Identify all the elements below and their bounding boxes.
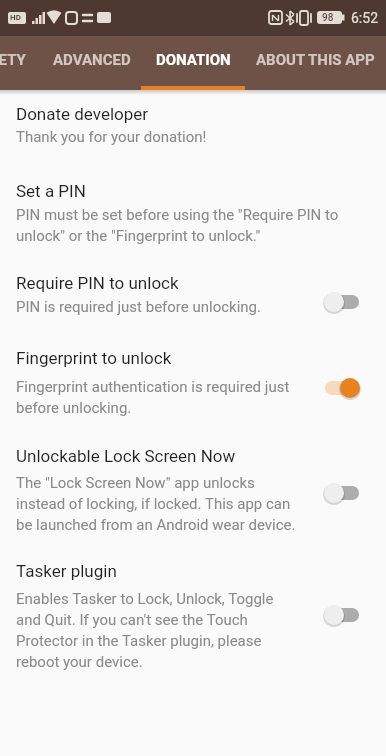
staticText: Tasker plugin [16,561,117,581]
staticText: ADVANCED [53,51,131,69]
staticText: Require PIN to unlock [16,273,179,293]
staticText: Enables Tasker to Lock, Unlock, Toggle a… [16,590,274,670]
staticText: Thank you for your donation! [16,128,207,146]
button[interactable]: ABOUT THIS APP [227,36,386,90]
button[interactable]: DONATION [136,36,250,90]
button[interactable]: Require PIN to unlock [0,262,386,336]
button[interactable]: Unlockable Lock Screen Now [0,435,386,550]
staticText: Set a PIN [16,181,86,201]
button[interactable]: Set a PIN [0,168,386,262]
staticText: Unlockable Lock Screen Now [16,446,236,466]
staticText: ABOUT THIS APP [256,51,375,69]
button[interactable]: ADVANCED [35,36,149,90]
staticText: SAFETY [0,51,26,69]
staticText: Donate developer [16,104,149,124]
staticText: 98 [322,12,334,24]
staticText: HD [10,13,21,22]
staticText: Fingerprint authentication is required j… [16,378,290,416]
button[interactable]: Tasker plugin [0,550,386,684]
staticText: The "Lock Screen Now" app unlocks instea… [16,474,296,533]
button[interactable]: SAFETY [0,36,45,90]
staticText: DONATION [156,51,231,69]
staticText: PIN must be set before using the "Requir… [16,206,339,244]
staticText: 6:52 [351,10,378,26]
staticText: Fingerprint to unlock [16,348,172,368]
button[interactable]: Donate developer [0,92,386,168]
button[interactable]: Fingerprint to unlock [0,336,386,435]
staticText: PIN is required just before unlocking. [16,298,262,316]
